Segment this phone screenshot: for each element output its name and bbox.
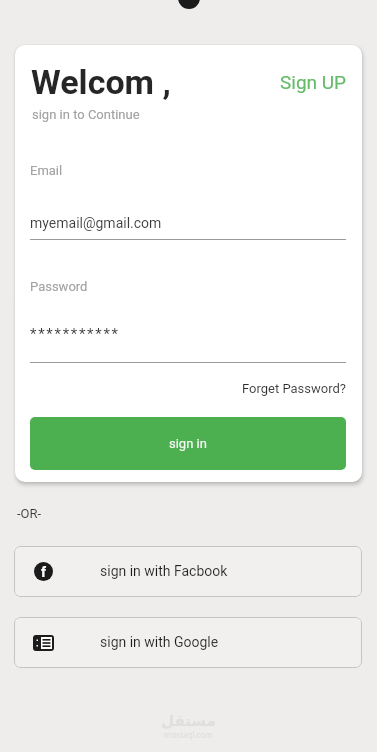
staticText: *********** [30, 325, 120, 343]
staticText: Sign UP [280, 71, 347, 93]
staticText: Forget Password? [242, 381, 346, 396]
staticText: Welcom , [31, 62, 171, 102]
staticText: Password [30, 279, 88, 294]
staticText: f [41, 564, 47, 580]
staticText: sign in to Continue [32, 107, 140, 122]
button[interactable]: sign in with Google [14, 617, 362, 668]
staticText: -OR- [17, 506, 42, 521]
button[interactable]: f [14, 546, 362, 597]
staticText: sign in with Google [100, 634, 219, 650]
button[interactable]: sign in [30, 417, 346, 470]
staticText: myemail@gmail.com [30, 215, 162, 231]
staticText: مستقل [161, 712, 216, 729]
button[interactable]: Forget Password? [242, 381, 346, 396]
staticText: sign in with Facbook [100, 563, 228, 579]
staticText: sign in [169, 436, 207, 451]
staticText: mostaql.com [164, 729, 213, 740]
staticText: Email [30, 163, 63, 178]
button[interactable]: Sign UP [280, 71, 347, 93]
